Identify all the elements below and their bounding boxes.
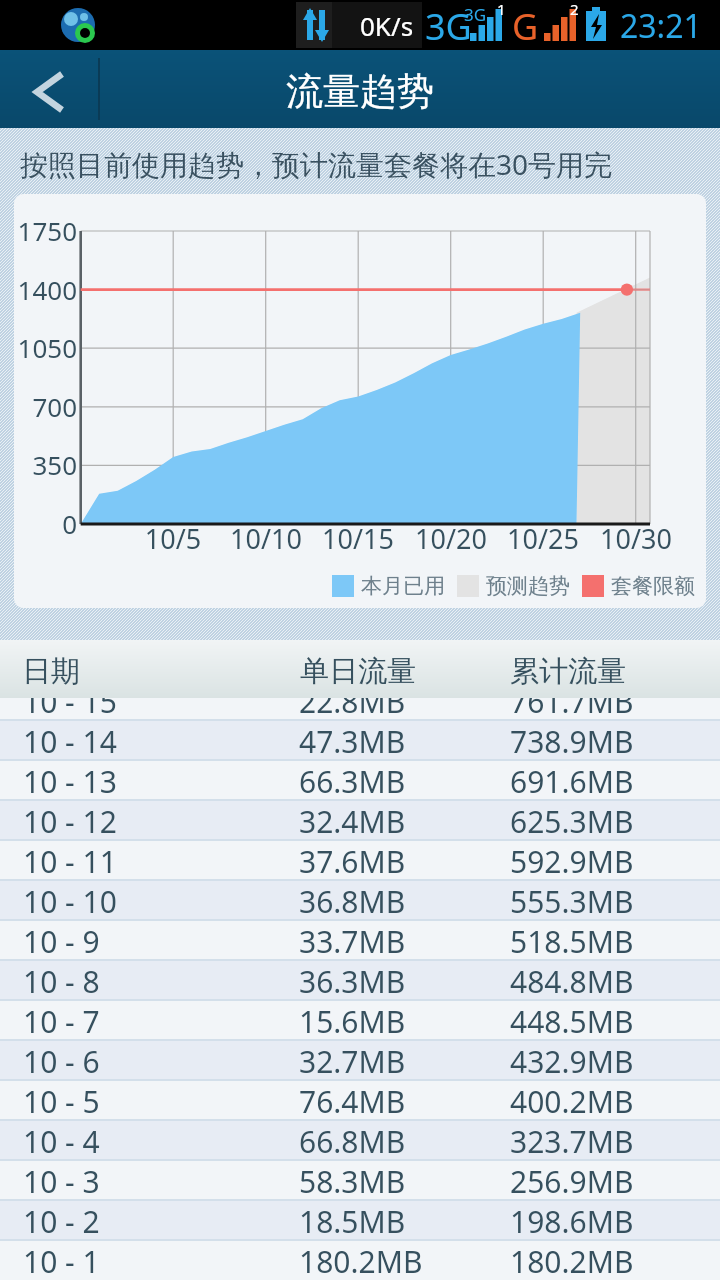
staticText: 10 - 13 (23, 761, 117, 801)
staticText: 单日流量 (300, 653, 416, 690)
staticText: 10 - 4 (23, 1121, 100, 1161)
staticText: 23:21 (620, 4, 702, 48)
staticText: 448.5MB (510, 1001, 634, 1041)
button[interactable]: 10 - 3 (0, 1161, 720, 1201)
staticText: 1050 (15, 330, 77, 365)
button[interactable]: 10 - 1 (0, 1241, 720, 1280)
staticText: 432.9MB (510, 1041, 634, 1081)
staticText: 484.8MB (510, 961, 634, 1001)
staticText: 323.7MB (510, 1121, 634, 1161)
staticText: 10/25 (488, 520, 598, 557)
staticText: 47.3MB (299, 721, 406, 761)
button[interactable]: 10 - 15 (0, 681, 720, 721)
staticText: 10/5 (118, 520, 228, 557)
staticText: 10/20 (396, 520, 506, 557)
staticText: 180.2MB (299, 1241, 423, 1280)
staticText: 日期 (22, 653, 80, 690)
staticText: 36.8MB (299, 881, 406, 921)
staticText: 625.3MB (510, 801, 634, 841)
staticText: 2 (570, 0, 579, 19)
button[interactable]: 10 - 2 (0, 1201, 720, 1241)
staticText: 180.2MB (510, 1241, 634, 1280)
staticText: 10/10 (211, 520, 321, 557)
staticText: 10/15 (303, 520, 413, 557)
staticText: 10 - 2 (23, 1201, 100, 1241)
staticText: 10/30 (581, 520, 691, 557)
staticText: 10 - 9 (23, 921, 100, 961)
staticText: 流量趋势 (286, 68, 434, 115)
staticText: 10 - 10 (23, 881, 117, 921)
staticText: 套餐限额 (611, 573, 695, 599)
staticText: 15.6MB (299, 1001, 406, 1041)
staticText: 22.8MB (299, 681, 406, 721)
staticText: 10 - 7 (23, 1001, 100, 1041)
staticText: 198.6MB (510, 1201, 634, 1241)
staticText: 32.4MB (299, 801, 406, 841)
staticText: 10 - 15 (23, 681, 117, 721)
button[interactable]: Back (0, 50, 98, 128)
button[interactable]: 10 - 13 (0, 761, 720, 801)
staticText: 555.3MB (510, 881, 634, 921)
staticText: 10 - 5 (23, 1081, 100, 1121)
staticText: 37.6MB (299, 841, 406, 881)
staticText: 10 - 12 (23, 801, 117, 841)
staticText: 预测趋势 (486, 573, 570, 599)
staticText: 66.3MB (299, 761, 406, 801)
staticText: 592.9MB (510, 841, 634, 881)
button[interactable]: 10 - 7 (0, 1001, 720, 1041)
staticText: 32.7MB (299, 1041, 406, 1081)
button[interactable]: 10 - 10 (0, 881, 720, 921)
staticText: 10 - 8 (23, 961, 100, 1001)
staticText: 累计流量 (510, 653, 626, 690)
button[interactable]: 10 - 6 (0, 1041, 720, 1081)
staticText: 256.9MB (510, 1161, 634, 1201)
staticText: 66.8MB (299, 1121, 406, 1161)
staticText: 3G (425, 2, 472, 51)
staticText: 10 - 11 (23, 841, 117, 881)
staticText: 700 (15, 389, 77, 424)
staticText: 33.7MB (299, 921, 406, 961)
staticText: 400.2MB (510, 1081, 634, 1121)
staticText: 1400 (15, 272, 77, 307)
staticText: 691.6MB (510, 761, 634, 801)
staticText: 518.5MB (510, 921, 634, 961)
staticText: 10 - 6 (23, 1041, 100, 1081)
staticText: G (512, 2, 539, 51)
button[interactable]: 10 - 14 (0, 721, 720, 761)
staticText: 0K/s (360, 8, 414, 43)
staticText: 18.5MB (299, 1201, 406, 1241)
button[interactable]: 10 - 12 (0, 801, 720, 841)
staticText: 1 (497, 0, 506, 19)
button[interactable]: 10 - 9 (0, 921, 720, 961)
staticText: 1750 (15, 213, 77, 248)
staticText: 10 - 1 (23, 1241, 100, 1280)
staticText: 738.9MB (510, 721, 634, 761)
button[interactable]: 10 - 11 (0, 841, 720, 881)
staticText: 本月已用 (361, 573, 445, 599)
button[interactable]: 10 - 4 (0, 1121, 720, 1161)
staticText: 0 (15, 506, 77, 541)
staticText: 按照目前使用趋势，预计流量套餐将在30号用完 (20, 145, 613, 183)
staticText: 36.3MB (299, 961, 406, 1001)
staticText: 10 - 3 (23, 1161, 100, 1201)
staticText: 76.4MB (299, 1081, 406, 1121)
staticText: 10 - 14 (23, 721, 117, 761)
staticText: 58.3MB (299, 1161, 406, 1201)
staticText: 761.7MB (510, 681, 634, 721)
staticText: 350 (15, 447, 77, 482)
button[interactable]: 10 - 8 (0, 961, 720, 1001)
staticText: 3G (464, 3, 487, 26)
button[interactable]: 10 - 5 (0, 1081, 720, 1121)
